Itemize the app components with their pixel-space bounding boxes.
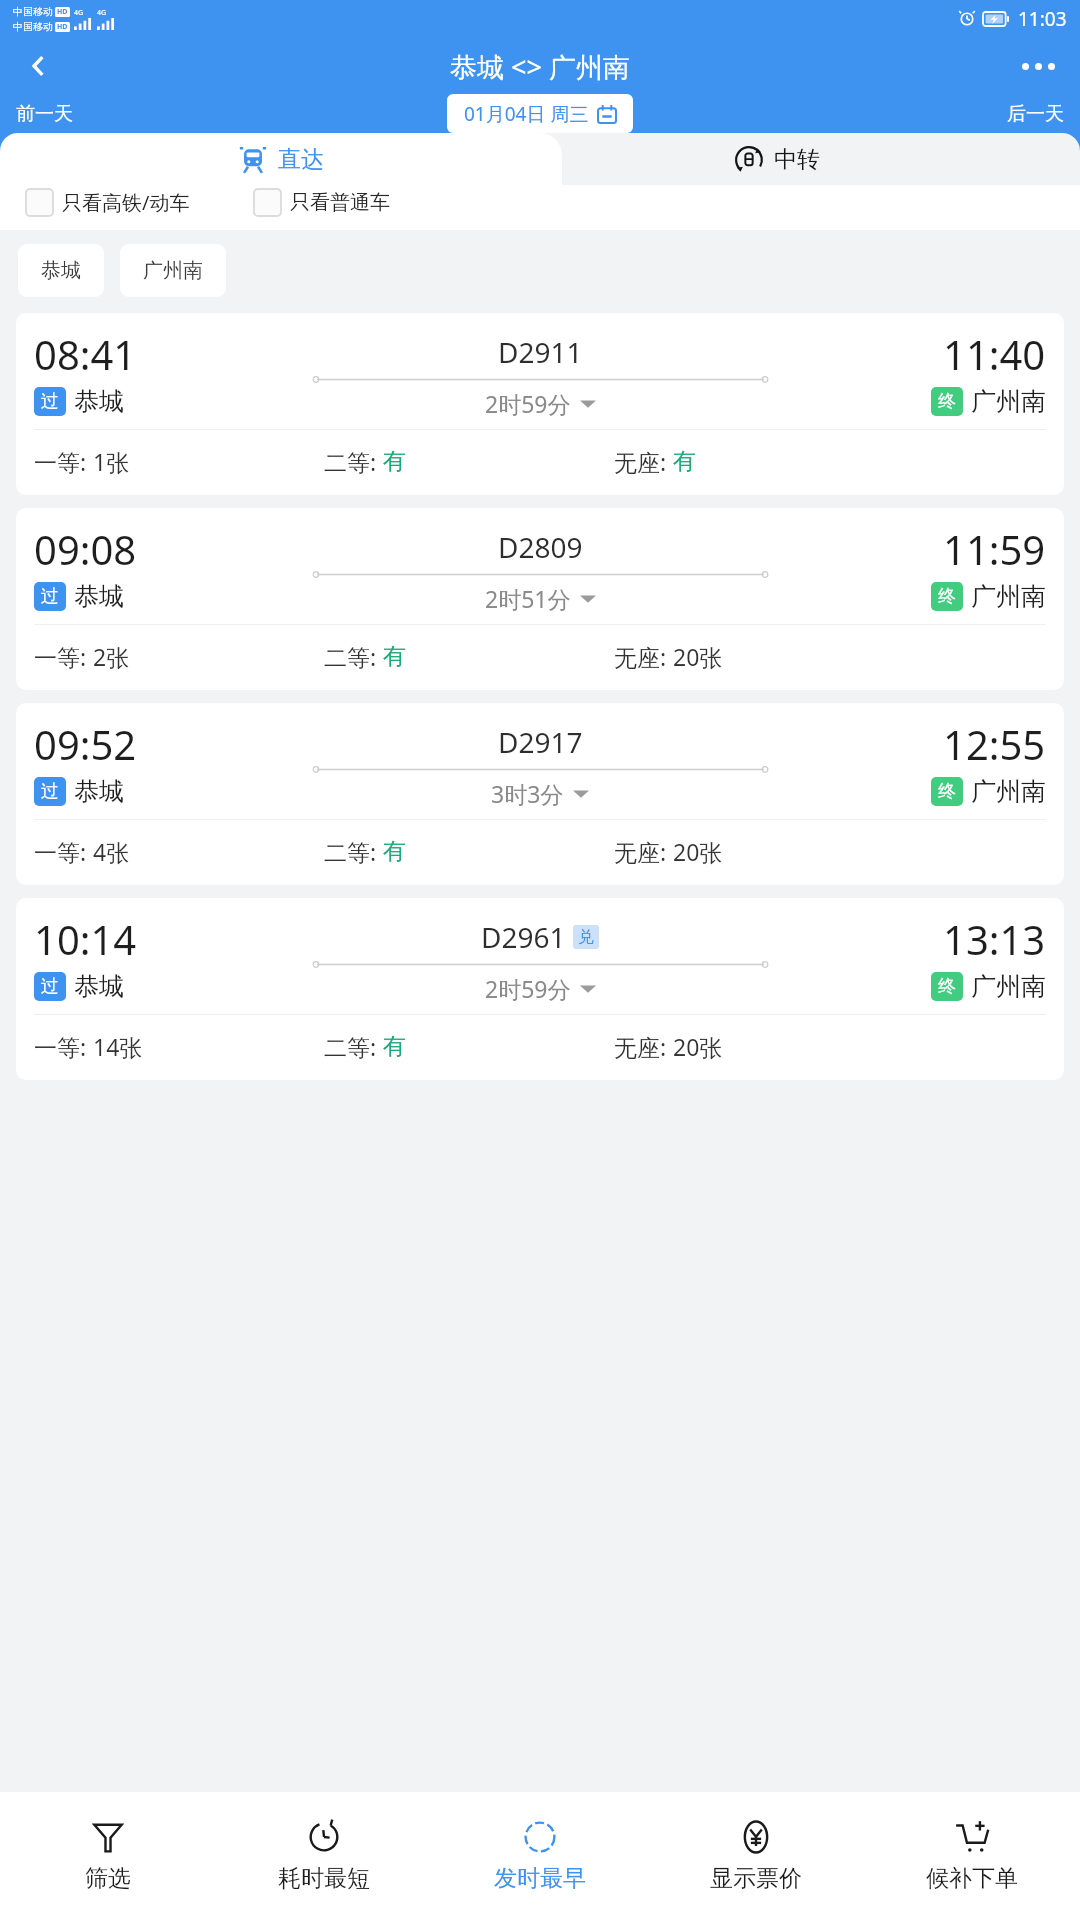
staticText: D2961 <box>481 918 566 956</box>
button[interactable]: 中转 <box>475 133 1080 185</box>
staticText: 二等: <box>324 1031 383 1062</box>
staticText: 终 <box>938 585 956 608</box>
button[interactable]: 候补下单 <box>864 1792 1080 1920</box>
staticText: 有 <box>383 447 406 476</box>
staticText: 4G <box>97 8 107 18</box>
staticText: 有 <box>383 642 406 671</box>
staticText: 4张 <box>93 836 130 867</box>
staticText: 01月04日 周三 <box>464 101 589 126</box>
staticText: 2时59分 <box>485 973 571 1004</box>
staticText: 一等: <box>34 641 93 672</box>
button[interactable]: 08:41 <box>16 313 1064 495</box>
staticText: 二等: <box>324 836 383 867</box>
button[interactable]: 恭城 <box>18 244 104 297</box>
button[interactable]: 09:52 <box>16 703 1064 885</box>
button[interactable]: 后一天 <box>991 94 1080 133</box>
button[interactable]: 01月04日 周三 <box>447 94 633 133</box>
staticText: 有 <box>383 837 406 866</box>
staticText: 无座: <box>614 641 673 672</box>
staticText: 一等: <box>34 446 93 477</box>
staticText: 过 <box>41 390 59 413</box>
staticText: 前一天 <box>16 102 73 126</box>
staticText: 20张 <box>673 836 723 867</box>
staticText: HD <box>57 7 68 17</box>
staticText: D2809 <box>498 528 583 566</box>
button[interactable]: 显示票价 <box>648 1792 864 1920</box>
staticText: 过 <box>41 780 59 803</box>
staticText: 二等: <box>324 446 383 477</box>
staticText: 后一天 <box>1007 102 1064 126</box>
staticText: 3时3分 <box>491 778 564 809</box>
staticText: 直达 <box>278 145 324 174</box>
staticText: 4G <box>74 8 84 18</box>
button[interactable]: 只看高铁/动车 <box>26 189 190 216</box>
staticText: 2时59分 <box>485 388 571 419</box>
staticText: 广州南 <box>143 258 203 283</box>
staticText: 只看普通车 <box>290 190 390 215</box>
staticText: 有 <box>383 1032 406 1061</box>
button[interactable]: 耗时最短 <box>216 1792 432 1920</box>
staticText: 广州南 <box>971 971 1046 1002</box>
staticText: 中转 <box>774 145 820 174</box>
staticText: 无座: <box>614 1031 673 1062</box>
staticText: 广州南 <box>971 776 1046 807</box>
button[interactable]: 前一天 <box>0 94 89 133</box>
button[interactable]: 广州南 <box>120 244 226 297</box>
staticText: 10:14 <box>34 912 137 966</box>
staticText: 候补下单 <box>926 1864 1018 1893</box>
staticText: 兑 <box>578 927 594 947</box>
staticText: 12:55 <box>943 717 1046 771</box>
staticText: 筛选 <box>85 1864 131 1893</box>
staticText: 2时51分 <box>485 583 571 614</box>
staticText: 13:13 <box>943 912 1046 966</box>
button[interactable]: 直达 <box>0 133 562 185</box>
staticText: 发时最早 <box>494 1864 586 1893</box>
staticText: 恭城 <> 广州南 <box>450 48 630 85</box>
button[interactable]: 10:14 <box>16 898 1064 1080</box>
staticText: 无座: <box>614 446 673 477</box>
staticText: 14张 <box>93 1031 143 1062</box>
staticText: 无座: <box>614 836 673 867</box>
staticText: 恭城 <box>74 776 124 807</box>
staticText: 2张 <box>93 641 130 672</box>
staticText: 广州南 <box>971 581 1046 612</box>
staticText: 一等: <box>34 1031 93 1062</box>
staticText: 09:08 <box>34 522 137 576</box>
staticText: 11:59 <box>943 522 1046 576</box>
staticText: 过 <box>41 975 59 998</box>
staticText: 过 <box>41 585 59 608</box>
staticText: 11:03 <box>1018 6 1067 32</box>
staticText: 中国移动 <box>13 5 53 18</box>
staticText: 中国移动 <box>13 20 53 33</box>
staticText: 恭城 <box>74 581 124 612</box>
staticText: 广州南 <box>971 386 1046 417</box>
staticText: 20张 <box>673 1031 723 1062</box>
staticText: 09:52 <box>34 717 137 771</box>
button[interactable]: 筛选 <box>0 1792 216 1920</box>
staticText: 终 <box>938 390 956 413</box>
staticText: D2911 <box>498 333 583 371</box>
staticText: D2917 <box>498 723 583 761</box>
button[interactable]: More options <box>996 38 1080 94</box>
staticText: 11:40 <box>943 327 1046 381</box>
staticText: 恭城 <box>74 971 124 1002</box>
button[interactable]: Back <box>0 38 78 94</box>
staticText: 一等: <box>34 836 93 867</box>
staticText: 终 <box>938 780 956 803</box>
staticText: 有 <box>673 447 696 476</box>
staticText: 二等: <box>324 641 383 672</box>
staticText: 只看高铁/动车 <box>62 189 190 216</box>
staticText: 恭城 <box>41 258 81 283</box>
staticText: 20张 <box>673 641 723 672</box>
staticText: 耗时最短 <box>278 1864 370 1893</box>
staticText: 恭城 <box>74 386 124 417</box>
staticText: 1张 <box>93 446 130 477</box>
button[interactable]: 09:08 <box>16 508 1064 690</box>
staticText: 显示票价 <box>710 1864 802 1893</box>
button[interactable]: 发时最早 <box>432 1792 648 1920</box>
staticText: HD <box>57 22 68 32</box>
button[interactable]: 只看普通车 <box>254 189 390 216</box>
staticText: 终 <box>938 975 956 998</box>
staticText: 08:41 <box>34 327 137 381</box>
